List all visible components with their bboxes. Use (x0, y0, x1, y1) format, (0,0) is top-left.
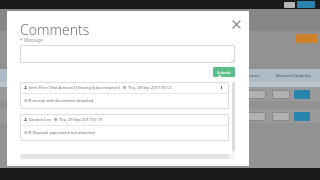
button[interactable] (272, 90, 290, 99)
button[interactable]: Submit (296, 34, 318, 43)
button[interactable] (240, 90, 266, 99)
staticText: Received Quantity (276, 73, 311, 78)
button[interactable] (232, 82, 235, 159)
button[interactable]: Gordon Lee (20, 114, 229, 141)
staticText: Gordon Lee (29, 117, 51, 122)
button[interactable] (297, 1, 315, 8)
staticText: Thu, 28 Sep 2017 09:12 (128, 85, 172, 90)
button[interactable]: Flag comment (220, 85, 225, 90)
button[interactable]: Close (229, 17, 243, 31)
button[interactable] (20, 45, 235, 63)
staticText: John Price (Test Account) [Testing Subco… (29, 85, 120, 90)
staticText: Reason (246, 73, 260, 78)
staticText: Submit (217, 70, 231, 75)
staticText: Comments (20, 20, 90, 37)
staticText: VCR receipt and documents attached (24, 98, 94, 103)
button[interactable] (240, 112, 266, 121)
button[interactable] (272, 112, 290, 121)
button[interactable]: Copy (294, 112, 310, 121)
staticText: * (20, 37, 23, 43)
button[interactable] (284, 2, 295, 8)
staticText: Thu, 29 Sep 2017 07:19 (59, 117, 103, 122)
staticText: VCR Disposal paperwork not attached (24, 130, 95, 135)
button[interactable]: Submit (213, 67, 235, 77)
staticText: Message (24, 37, 43, 43)
button[interactable]: John Price (Test Account) [Testing Subco… (20, 82, 229, 109)
button[interactable]: Copy (294, 90, 310, 99)
